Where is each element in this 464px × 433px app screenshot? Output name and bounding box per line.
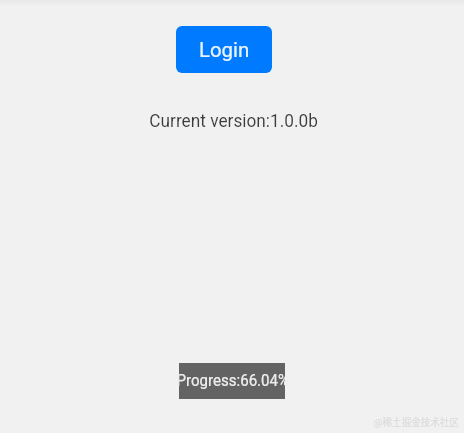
staticText: Login: [199, 38, 250, 61]
staticText: @稀土掘金技术社区: [373, 414, 459, 428]
staticText: Progress:66.04%: [176, 371, 289, 390]
button[interactable]: Login: [176, 26, 272, 73]
staticText: Current version:1.0.0b: [149, 111, 319, 132]
